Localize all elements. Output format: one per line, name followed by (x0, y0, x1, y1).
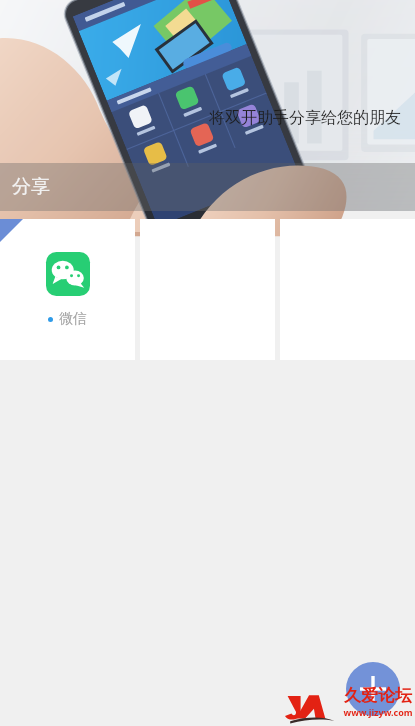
button[interactable]: Add (346, 662, 400, 716)
staticText: 久爱论坛 (344, 685, 412, 706)
staticText: 微信 (59, 310, 87, 328)
staticText: www.jizyw.com (343, 706, 413, 718)
staticText: 将双开助手分享给您的朋友 (209, 108, 401, 128)
staticText: 分享 (12, 175, 50, 199)
button[interactable]: 微信 (0, 219, 135, 360)
